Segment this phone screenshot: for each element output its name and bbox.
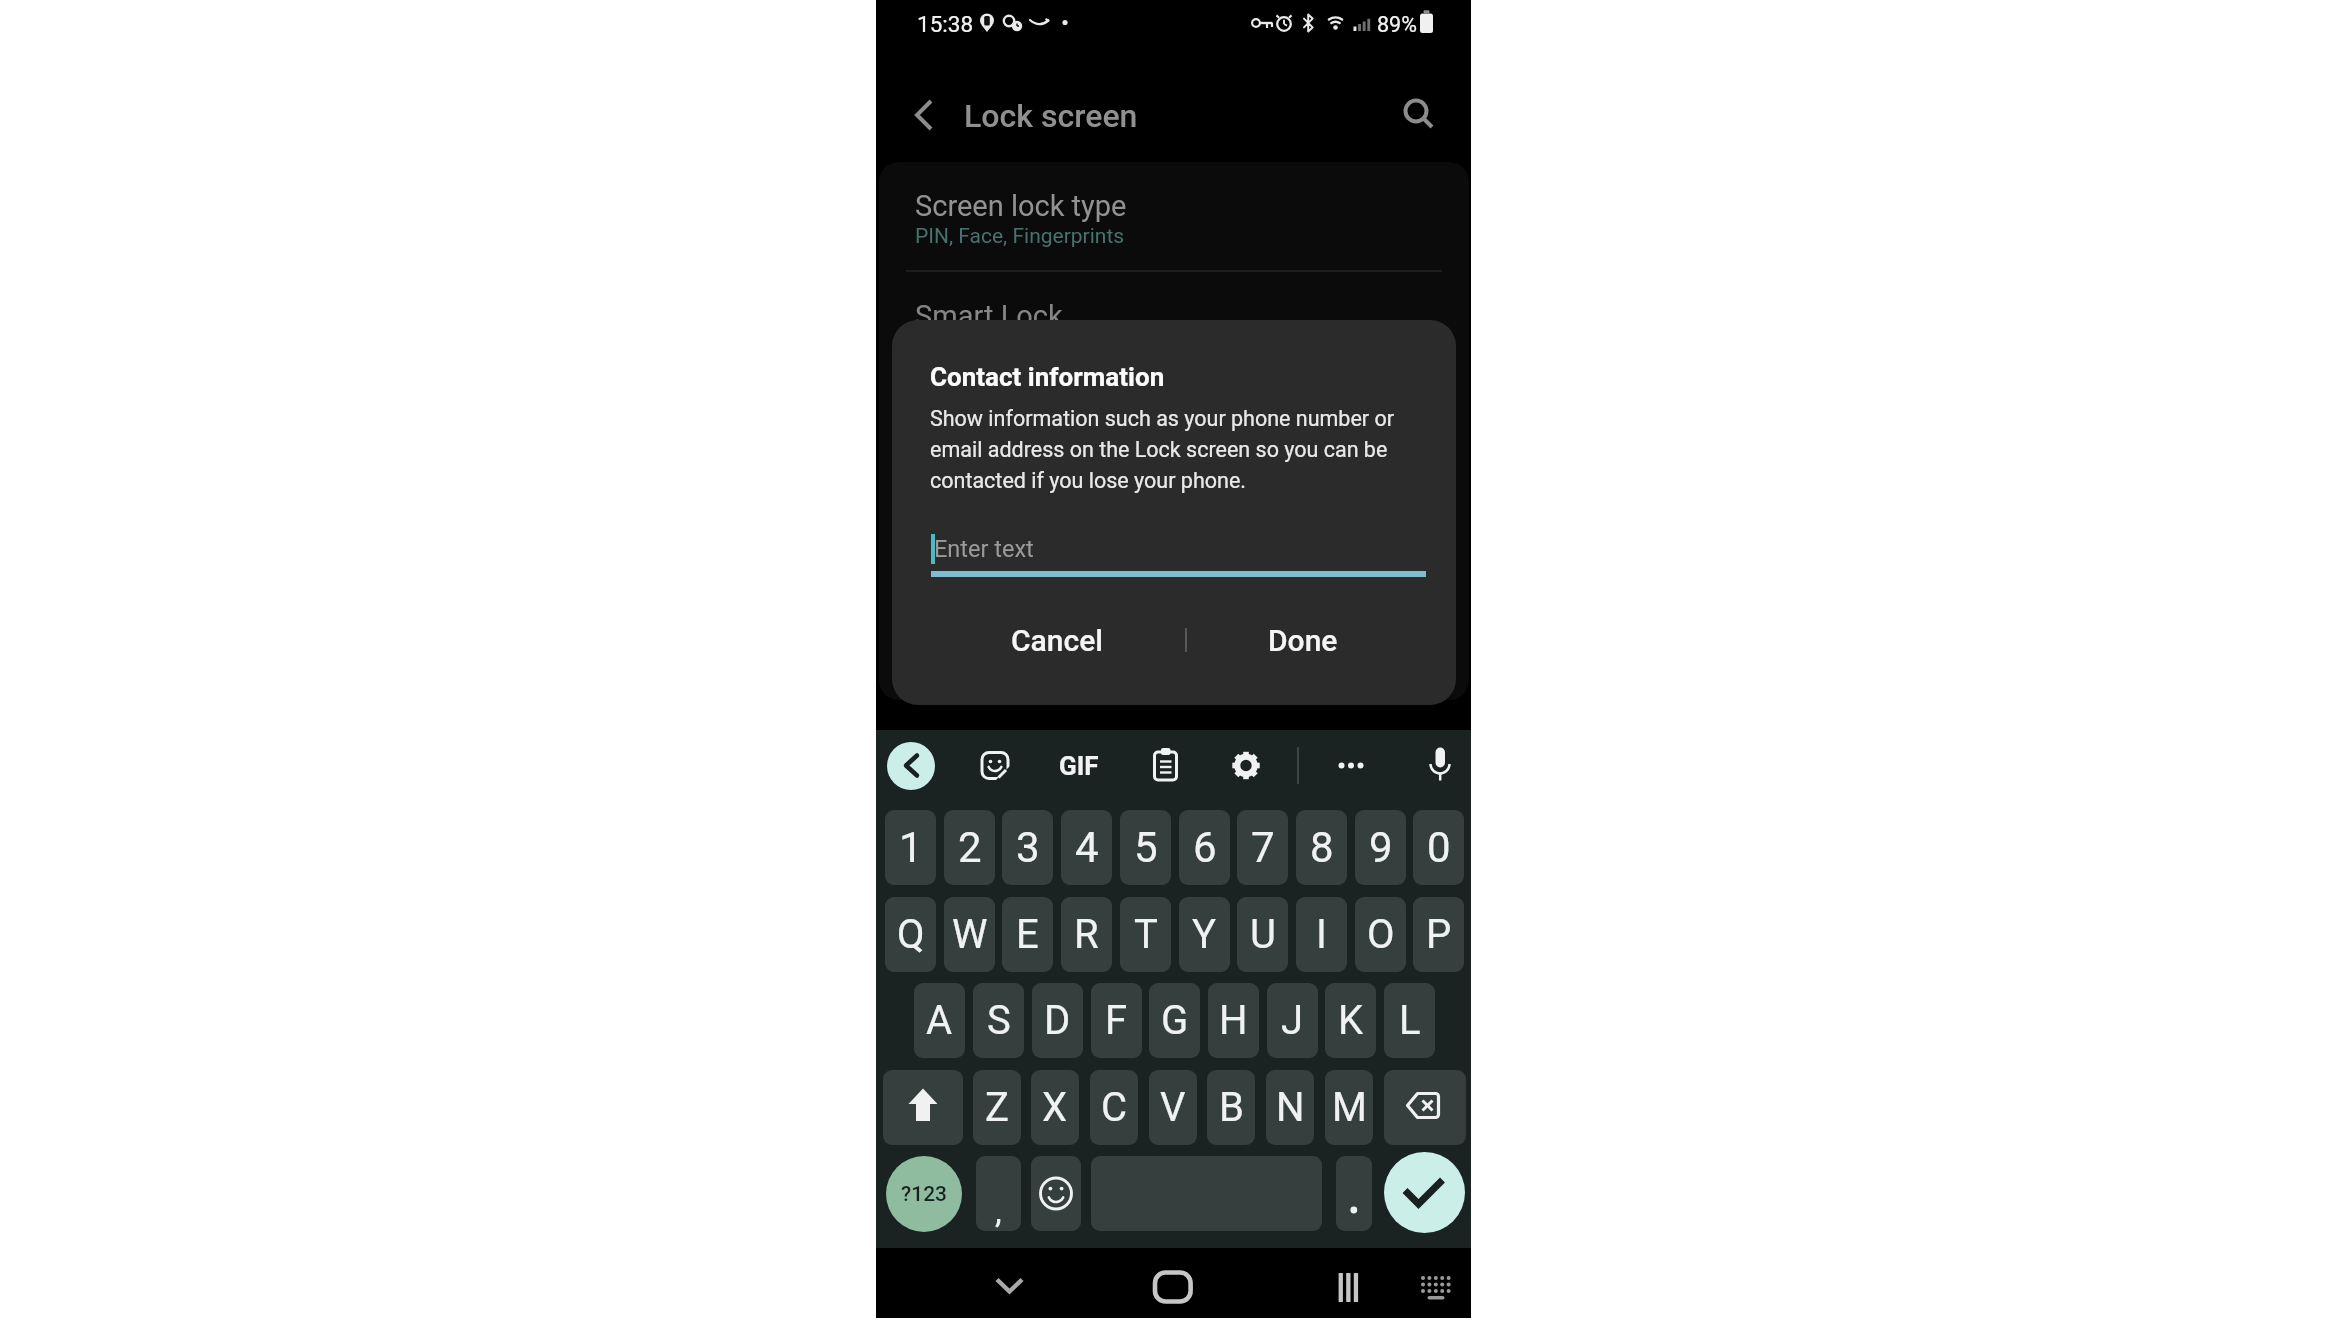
staticText: C [1101, 1084, 1128, 1131]
button[interactable]: C [1090, 1070, 1138, 1145]
button[interactable]: J [1267, 983, 1318, 1058]
button[interactable]: 3 [1002, 810, 1053, 885]
button[interactable] [979, 1255, 1039, 1311]
staticText: 89% [1377, 12, 1417, 37]
staticText: 8 [1310, 823, 1334, 872]
button[interactable]: V [1149, 1070, 1197, 1145]
button[interactable] [1418, 743, 1463, 788]
staticText: M [1332, 1084, 1367, 1131]
staticText: , [995, 1191, 1002, 1231]
staticText: X [1042, 1084, 1068, 1131]
staticText: A [926, 997, 953, 1044]
button[interactable]: W [944, 897, 995, 972]
button[interactable]: L [1384, 983, 1435, 1058]
button[interactable]: A [914, 983, 965, 1058]
button[interactable] [1384, 1070, 1466, 1145]
staticText: 4 [1075, 823, 1099, 872]
staticText: F [1105, 997, 1128, 1044]
button[interactable]: M [1325, 1070, 1373, 1145]
button[interactable]: 4 [1061, 810, 1112, 885]
button[interactable] [1031, 1156, 1081, 1231]
button[interactable] [887, 742, 935, 790]
button[interactable]: I [1296, 897, 1347, 972]
button[interactable]: 7 [1237, 810, 1288, 885]
staticText: 5 [1134, 823, 1158, 872]
button[interactable]: 9 [1355, 810, 1406, 885]
staticText: D [1044, 997, 1071, 1044]
button[interactable] [892, 282, 1456, 320]
staticText: Q [897, 911, 925, 958]
staticText: Enter text [934, 535, 1034, 563]
button[interactable]: G [1149, 983, 1200, 1058]
button[interactable]: D [1032, 983, 1083, 1058]
button[interactable] [973, 743, 1018, 788]
staticText: 1 [899, 823, 923, 872]
button[interactable] [930, 528, 1426, 576]
staticText: Z [985, 1084, 1009, 1131]
button[interactable]: O [1355, 897, 1406, 972]
button[interactable]: F [1091, 983, 1142, 1058]
button[interactable]: Y [1179, 897, 1230, 972]
button[interactable] [1336, 1156, 1372, 1231]
staticText: 9 [1369, 823, 1393, 872]
button[interactable]: 5 [1120, 810, 1171, 885]
button[interactable]: T [1120, 897, 1171, 972]
button[interactable]: Cancel [996, 616, 1119, 664]
button[interactable] [1224, 743, 1269, 788]
button[interactable]: N [1266, 1070, 1314, 1145]
staticText: K [1338, 997, 1364, 1044]
staticText: email address on the Lock screen so you … [930, 437, 1388, 462]
staticText: B [1219, 1084, 1244, 1131]
staticText: Show information such as your phone numb… [930, 406, 1395, 431]
button[interactable] [1384, 1152, 1465, 1233]
button[interactable]: 0 [1413, 810, 1464, 885]
button[interactable]: S [973, 983, 1024, 1058]
staticText: H [1219, 997, 1248, 1044]
staticText: Done [1268, 623, 1338, 658]
button[interactable] [901, 95, 945, 139]
button[interactable] [1406, 1255, 1466, 1311]
staticText: I [1316, 911, 1327, 958]
button[interactable]: H [1208, 983, 1259, 1058]
staticText: P [1426, 911, 1452, 958]
button[interactable]: 1 [885, 810, 936, 885]
staticText: Contact information [930, 362, 1165, 392]
staticText: 0 [1427, 823, 1451, 872]
button[interactable] [1394, 90, 1438, 134]
button[interactable]: K [1325, 983, 1376, 1058]
staticText: 3 [1016, 823, 1040, 872]
button[interactable]: GIF [1048, 750, 1109, 781]
staticText: S [987, 997, 1011, 1044]
button[interactable]: R [1061, 897, 1112, 972]
staticText: 7 [1251, 823, 1275, 872]
button[interactable]: U [1237, 897, 1288, 972]
button[interactable] [1328, 743, 1373, 788]
button[interactable]: P [1413, 897, 1464, 972]
button[interactable]: E [1002, 897, 1053, 972]
button[interactable] [1143, 743, 1188, 788]
staticText: U [1250, 911, 1276, 958]
button[interactable]: Done [1241, 616, 1364, 664]
button[interactable] [1317, 1255, 1377, 1311]
button[interactable]: ?123 [886, 1156, 962, 1232]
button[interactable]: Q [885, 897, 936, 972]
staticText: L [1399, 997, 1421, 1044]
button[interactable]: 2 [944, 810, 995, 885]
staticText: ?123 [901, 1182, 948, 1207]
staticText: T [1134, 911, 1158, 958]
button[interactable]: 8 [1296, 810, 1347, 885]
staticText: Cancel [1011, 623, 1104, 658]
button[interactable]: , [976, 1156, 1021, 1231]
button[interactable]: Z [973, 1070, 1021, 1145]
staticText: Y [1192, 911, 1217, 958]
button[interactable]: 6 [1179, 810, 1230, 885]
button[interactable] [883, 1070, 963, 1145]
button[interactable]: X [1031, 1070, 1079, 1145]
button[interactable]: B [1207, 1070, 1255, 1145]
button[interactable] [892, 170, 1456, 262]
staticText: O [1367, 911, 1395, 958]
staticText: R [1074, 911, 1099, 958]
staticText: 6 [1193, 823, 1217, 872]
button[interactable] [1143, 1255, 1203, 1311]
